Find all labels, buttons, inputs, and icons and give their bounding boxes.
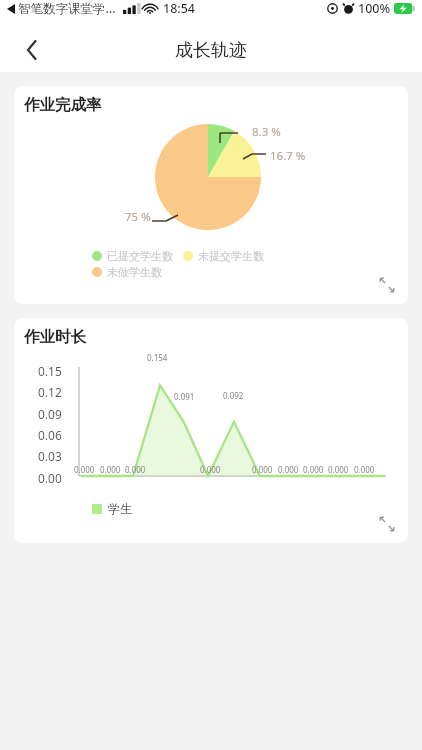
staticText: 0.091: [174, 391, 195, 402]
staticText: 8.3 %: [252, 124, 281, 140]
staticText: 作业时长: [24, 327, 86, 347]
staticText: 0.000: [278, 464, 299, 475]
staticText: 0.092: [223, 390, 244, 401]
button[interactable]: 作业完成率: [14, 86, 408, 304]
staticText: 未提交学生数: [198, 249, 264, 263]
staticText: 0.12: [38, 384, 62, 400]
staticText: 0.03: [38, 448, 62, 464]
staticText: 0.06: [38, 427, 62, 443]
staticText: 0.000: [200, 464, 221, 475]
staticText: 18:54: [163, 0, 196, 17]
button[interactable]: 作业时长: [14, 318, 408, 543]
staticText: 0.00: [38, 470, 62, 486]
staticText: 0.09: [38, 406, 62, 422]
staticText: 0.000: [328, 464, 349, 475]
staticText: 75 %: [125, 209, 151, 225]
staticText: 已提交学生数: [107, 249, 173, 263]
staticText: 0.000: [125, 464, 146, 475]
staticText: 0.000: [100, 464, 121, 475]
staticText: 0.000: [354, 464, 375, 475]
staticText: 作业完成率: [24, 95, 102, 115]
staticText: 16.7 %: [270, 148, 306, 164]
button[interactable]: Expand chart: [374, 272, 400, 298]
button[interactable]: Back: [14, 32, 50, 68]
staticText: 0.000: [303, 464, 324, 475]
staticText: 0.000: [74, 464, 95, 475]
staticText: 0.000: [252, 464, 273, 475]
button[interactable]: Expand chart: [374, 511, 400, 537]
staticText: 未做学生数: [107, 265, 162, 279]
staticText: 智笔数字课堂学…: [18, 0, 116, 17]
staticText: 成长轨迹: [175, 39, 247, 62]
staticText: 0.154: [147, 352, 168, 363]
staticText: 学生: [108, 501, 132, 516]
staticText: 0.15: [38, 363, 62, 379]
staticText: 100%: [358, 0, 391, 17]
